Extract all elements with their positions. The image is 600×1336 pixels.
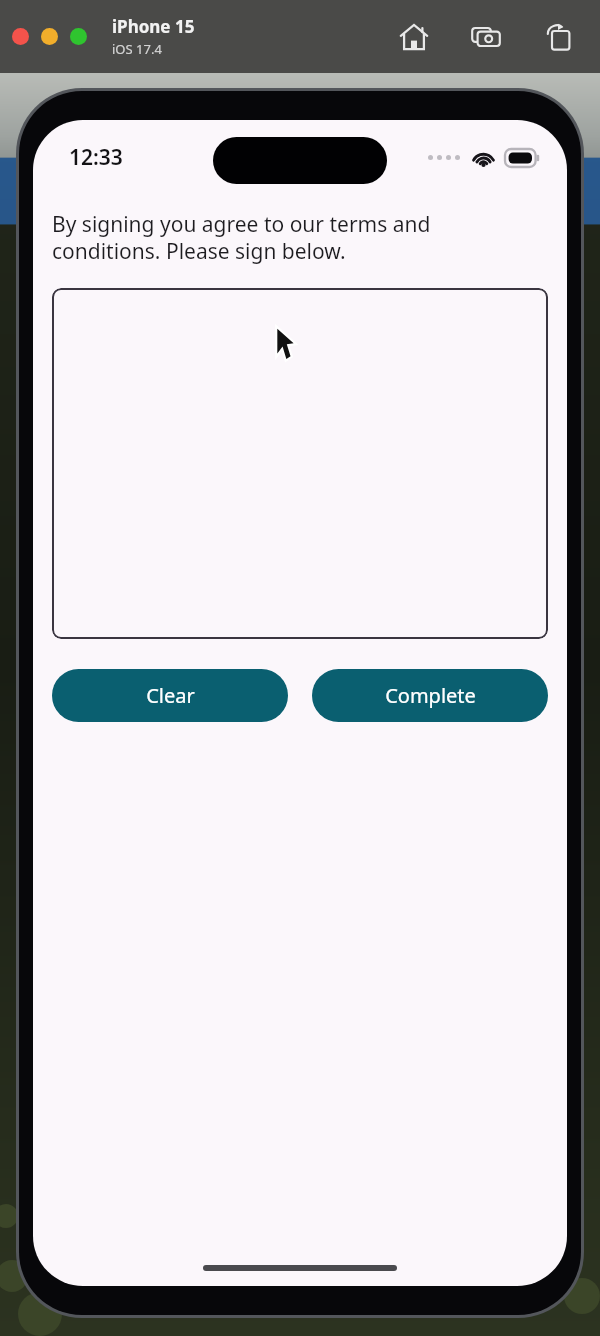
staticText: By signing you agree to our terms and co… [52, 210, 531, 265]
button[interactable]: Rotate [538, 17, 578, 57]
staticText: 12:33 [69, 143, 123, 172]
staticText: iOS 17.4 [112, 40, 162, 58]
button[interactable]: Clear [52, 669, 288, 722]
button[interactable]: Complete [312, 669, 548, 722]
button[interactable] [70, 28, 87, 45]
button[interactable]: Screenshot [466, 17, 506, 57]
staticText: Clear [146, 682, 195, 709]
button[interactable]: Home [394, 17, 434, 57]
button[interactable] [12, 28, 29, 45]
button[interactable]: Signature area [52, 288, 548, 639]
button[interactable] [41, 28, 58, 45]
staticText: iPhone 15 [112, 15, 195, 38]
staticText: Complete [385, 682, 476, 709]
